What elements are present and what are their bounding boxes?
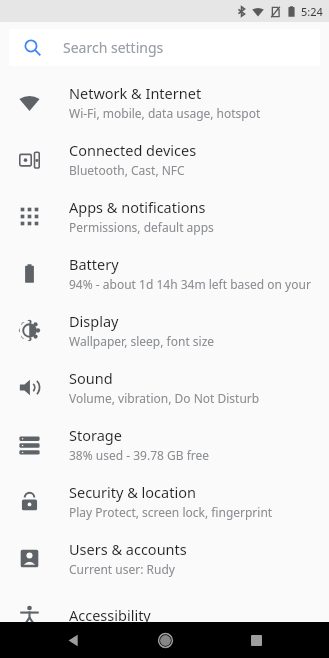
staticText: Current user: Rudy [69,561,175,577]
staticText: Security & location [69,482,196,502]
button[interactable]: Search settings [9,29,320,66]
staticText: Display [69,311,119,331]
staticText: Bluetooth, Cast, NFC [69,162,185,178]
staticText: Battery [69,254,119,274]
staticText: 5:24 [301,4,323,19]
staticText: Volume, vibration, Do Not Disturb [69,390,260,406]
staticText: Storage [69,425,122,445]
staticText: Sound [69,368,113,388]
staticText: Users & accounts [69,539,187,559]
staticText: Connected devices [69,140,197,160]
button[interactable]: Connected devices [0,130,329,187]
staticText: Wi-Fi, mobile, data usage, hotspot [69,105,261,121]
staticText: Wallpaper, sleep, font size [69,333,215,349]
staticText: 38% used - 39.78 GB free [69,447,210,463]
staticText: Search settings [63,38,164,57]
button[interactable]: Home [147,622,183,658]
staticText: 94% - about 1d 14h 34m left based on you… [69,276,317,292]
button[interactable]: Security & location [0,472,329,529]
button[interactable]: Storage [0,415,329,472]
staticText: Accessibility [69,605,151,625]
button[interactable]: Users & accounts [0,529,329,586]
button[interactable]: Recents [238,622,274,658]
button[interactable]: Apps & notifications [0,187,329,244]
button[interactable]: Battery [0,244,329,301]
staticText: Network & Internet [69,83,202,103]
button[interactable]: Back [55,622,91,658]
button[interactable]: Sound [0,358,329,415]
button[interactable]: Network & Internet [0,73,329,130]
staticText: Apps & notifications [69,197,206,217]
staticText: Permissions, default apps [69,219,214,235]
button[interactable]: Display [0,301,329,358]
staticText: Play Protect, screen lock, fingerprint [69,504,273,520]
button[interactable]: Accessibility [0,586,329,643]
